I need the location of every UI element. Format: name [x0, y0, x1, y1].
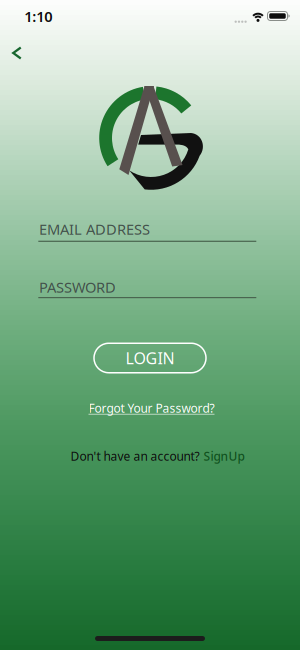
- button[interactable]: Back: [3, 37, 31, 68]
- button[interactable]: LOGIN: [94, 343, 206, 373]
- staticText: LOGIN: [125, 347, 174, 369]
- staticText: PASSWORD: [39, 277, 116, 297]
- button[interactable]: SignUp: [203, 448, 244, 464]
- staticText: 1:10: [24, 7, 52, 26]
- button[interactable]: Forgot Your Password?: [88, 400, 214, 416]
- staticText: Forgot Your Password?: [88, 400, 214, 416]
- staticText: SignUp: [203, 448, 244, 464]
- staticText: EMAIL ADDRESS: [39, 219, 150, 239]
- staticText: Don't have an account?: [70, 448, 199, 464]
